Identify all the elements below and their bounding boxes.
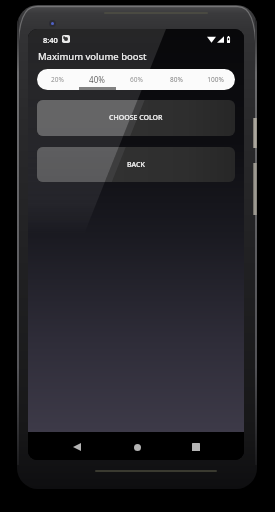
button[interactable]: 80% <box>156 69 196 90</box>
staticText: CHOOSE COLOR <box>109 113 163 123</box>
button[interactable]: CHOOSE COLOR <box>37 100 235 136</box>
staticText: BACK <box>127 160 145 170</box>
staticText: Maximum volume boost <box>38 50 147 63</box>
staticText: 40% <box>89 74 105 85</box>
button[interactable]: BACK <box>37 147 235 182</box>
button[interactable]: Back <box>66 436 88 458</box>
button[interactable]: 60% <box>116 69 156 90</box>
button[interactable]: 40% <box>77 69 117 90</box>
button[interactable]: Recent apps <box>185 436 207 458</box>
button[interactable]: 20% <box>37 69 77 90</box>
staticText: 80% <box>170 75 183 84</box>
staticText: 100% <box>207 75 224 84</box>
staticText: 8:40 <box>43 35 58 45</box>
staticText: 20% <box>51 75 64 84</box>
staticText: 60% <box>130 75 143 84</box>
button[interactable]: Home <box>126 436 148 458</box>
button[interactable]: 100% <box>195 69 235 90</box>
